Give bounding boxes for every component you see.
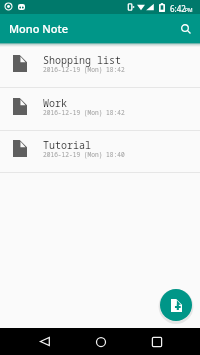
- staticText: Work: [43, 96, 67, 110]
- button[interactable]: Work: [0, 86, 200, 129]
- staticText: PM: [185, 7, 193, 14]
- button[interactable]: Back: [33, 330, 56, 353]
- staticText: 2016-12-19 (Mon) 18:40: [43, 150, 125, 158]
- staticText: 2016-12-19 (Mon) 18:42: [43, 108, 125, 116]
- staticText: Shopping list: [43, 53, 121, 67]
- button[interactable]: Home: [89, 330, 112, 353]
- button[interactable]: New note: [160, 289, 192, 321]
- button[interactable]: Recents: [145, 330, 168, 353]
- staticText: Tutorial: [43, 138, 91, 152]
- button[interactable]: Search: [176, 19, 195, 38]
- staticText: Mono Note: [9, 21, 69, 36]
- staticText: 2016-12-19 (Mon) 18:42: [43, 65, 125, 73]
- button[interactable]: Tutorial: [0, 128, 200, 171]
- button[interactable]: Shopping list: [0, 43, 200, 86]
- staticText: 6:42: [170, 3, 186, 14]
